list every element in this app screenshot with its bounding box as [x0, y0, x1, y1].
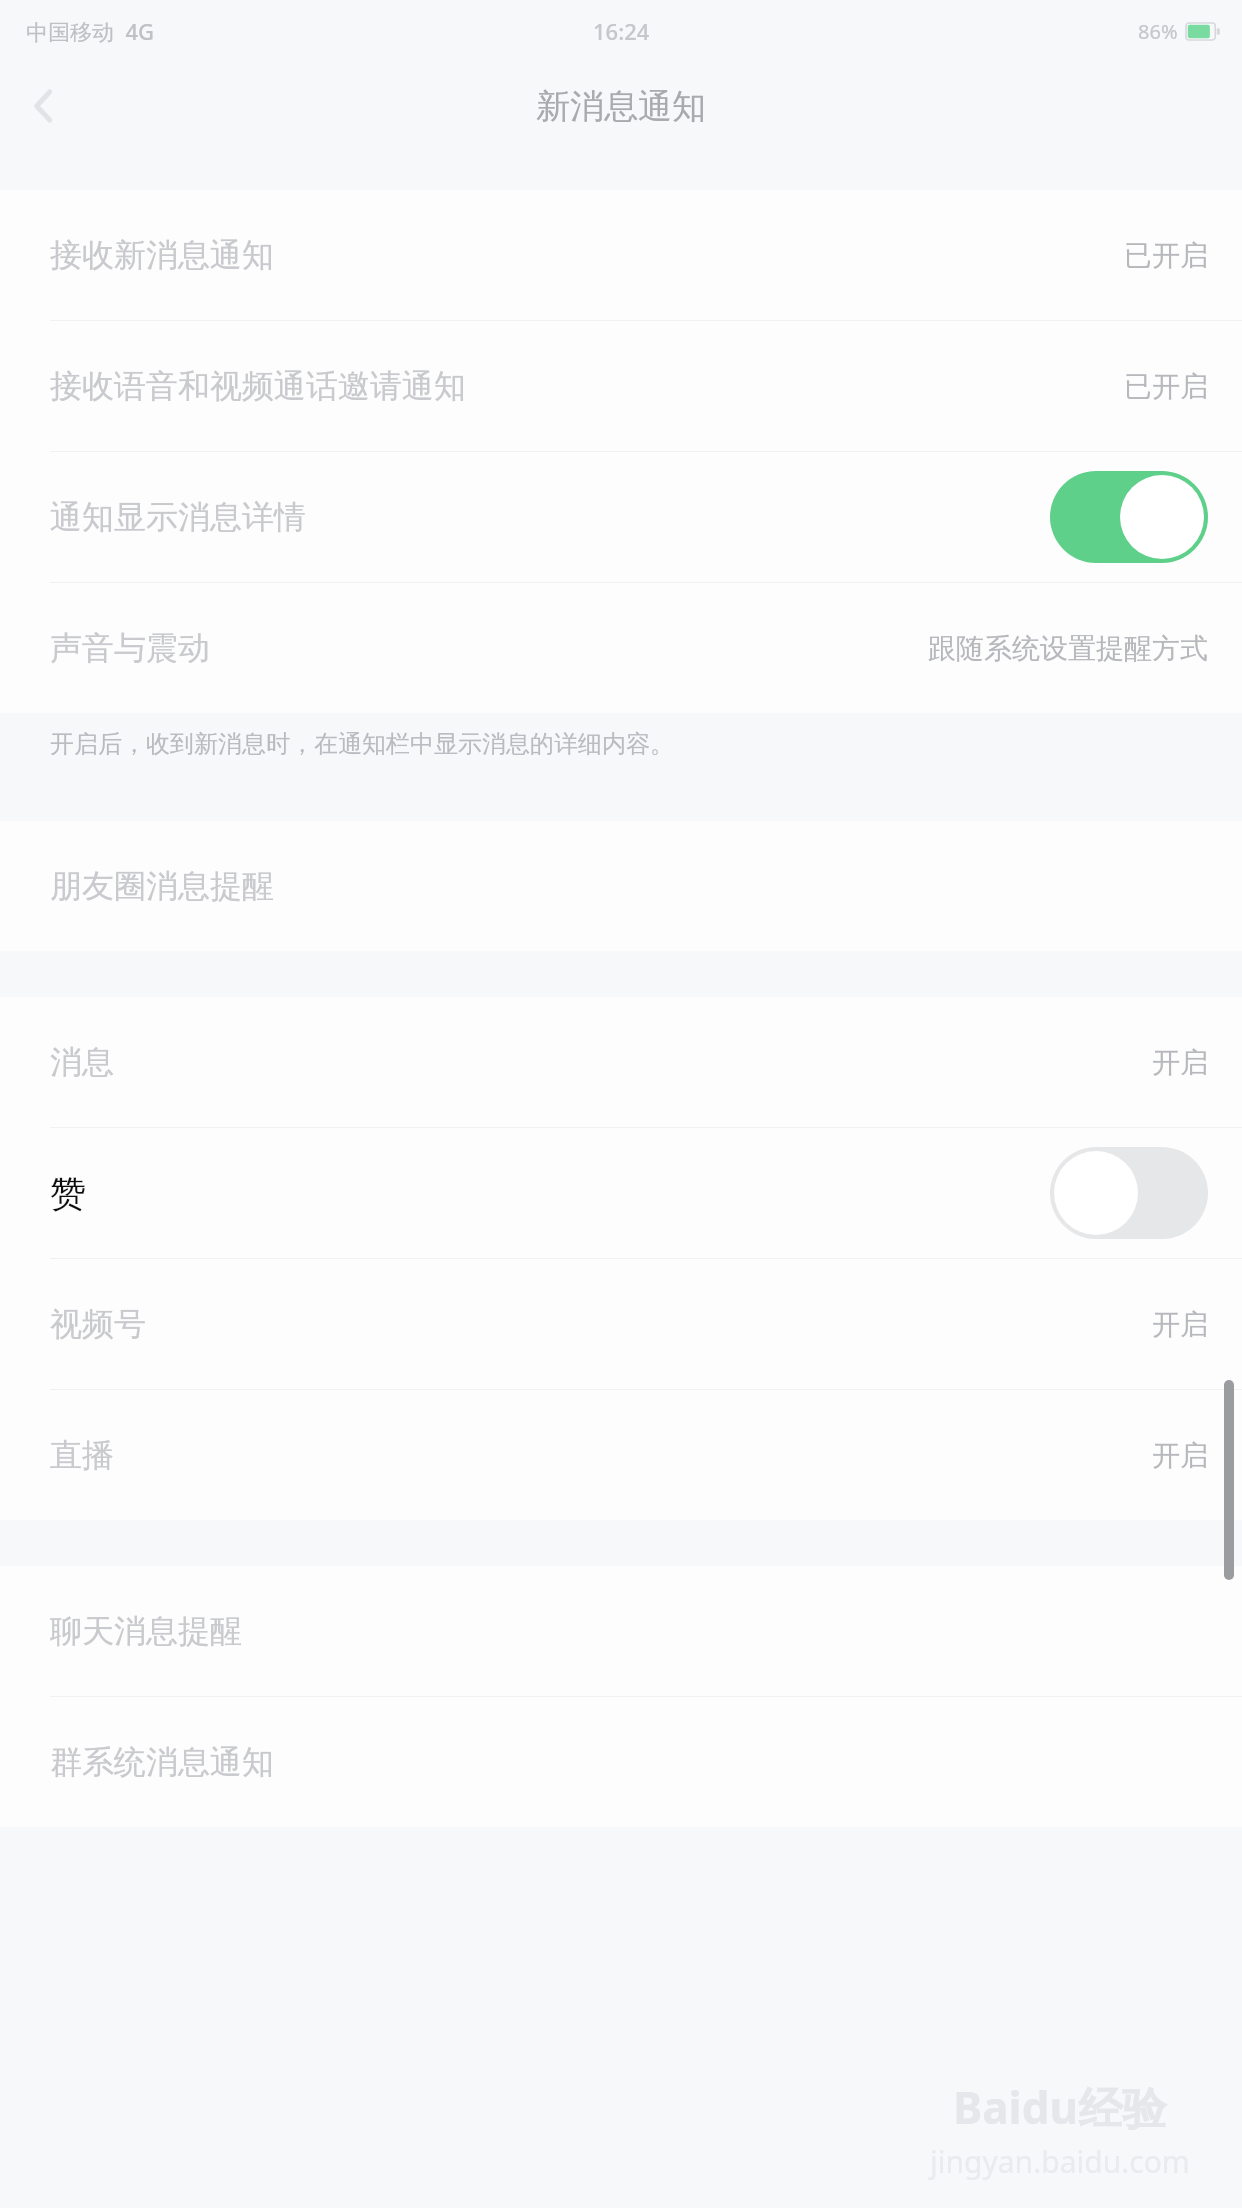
staticText: 16:24: [593, 16, 650, 46]
button[interactable]: 接收语音和视频通话邀请通知: [0, 321, 1242, 451]
button[interactable]: 直播: [0, 1390, 1242, 1520]
staticText: 视频号: [50, 1304, 146, 1344]
staticText: 聊天消息提醒: [50, 1611, 242, 1651]
button[interactable]: 声音与震动: [0, 583, 1242, 713]
staticText: 跟随系统设置提醒方式: [928, 631, 1208, 666]
button[interactable]: 通知显示消息详情: [0, 452, 1242, 582]
staticText: 开启: [1152, 1307, 1208, 1342]
staticText: 新消息通知: [536, 85, 706, 128]
button[interactable]: 朋友圈消息提醒: [0, 821, 1242, 951]
button[interactable]: 接收新消息通知: [0, 190, 1242, 320]
staticText: 86%: [1138, 18, 1178, 45]
staticText: 消息: [50, 1042, 114, 1082]
staticText: 已开启: [1124, 369, 1208, 404]
staticText: 赞: [50, 1171, 86, 1216]
button[interactable]: 聊天消息提醒: [0, 1566, 1242, 1696]
button[interactable]: 消息: [0, 997, 1242, 1127]
staticText: 通知显示消息详情: [50, 497, 306, 537]
staticText: 中国移动 4G: [26, 16, 155, 46]
staticText: 接收语音和视频通话邀请通知: [50, 366, 466, 406]
staticText: 声音与震动: [50, 628, 210, 668]
button[interactable]: 关闭: [1050, 1147, 1208, 1239]
button[interactable]: 视频号: [0, 1259, 1242, 1389]
staticText: 接收新消息通知: [50, 235, 274, 275]
staticText: 开启后，收到新消息时，在通知栏中显示消息的详细内容。: [50, 729, 674, 759]
staticText: 已开启: [1124, 238, 1208, 273]
staticText: 朋友圈消息提醒: [50, 866, 274, 906]
button[interactable]: 群系统消息通知: [0, 1697, 1242, 1827]
button[interactable]: 开启: [1050, 471, 1208, 563]
staticText: 直播: [50, 1435, 114, 1475]
staticText: 群系统消息通知: [50, 1742, 274, 1782]
staticText: 开启: [1152, 1438, 1208, 1473]
button[interactable]: 返回: [0, 62, 88, 150]
staticText: 开启: [1152, 1045, 1208, 1080]
button[interactable]: 赞: [0, 1128, 1242, 1258]
staticText: Baidu经验: [953, 2077, 1167, 2137]
staticText: jingyan.baidu.com: [930, 2141, 1190, 2182]
